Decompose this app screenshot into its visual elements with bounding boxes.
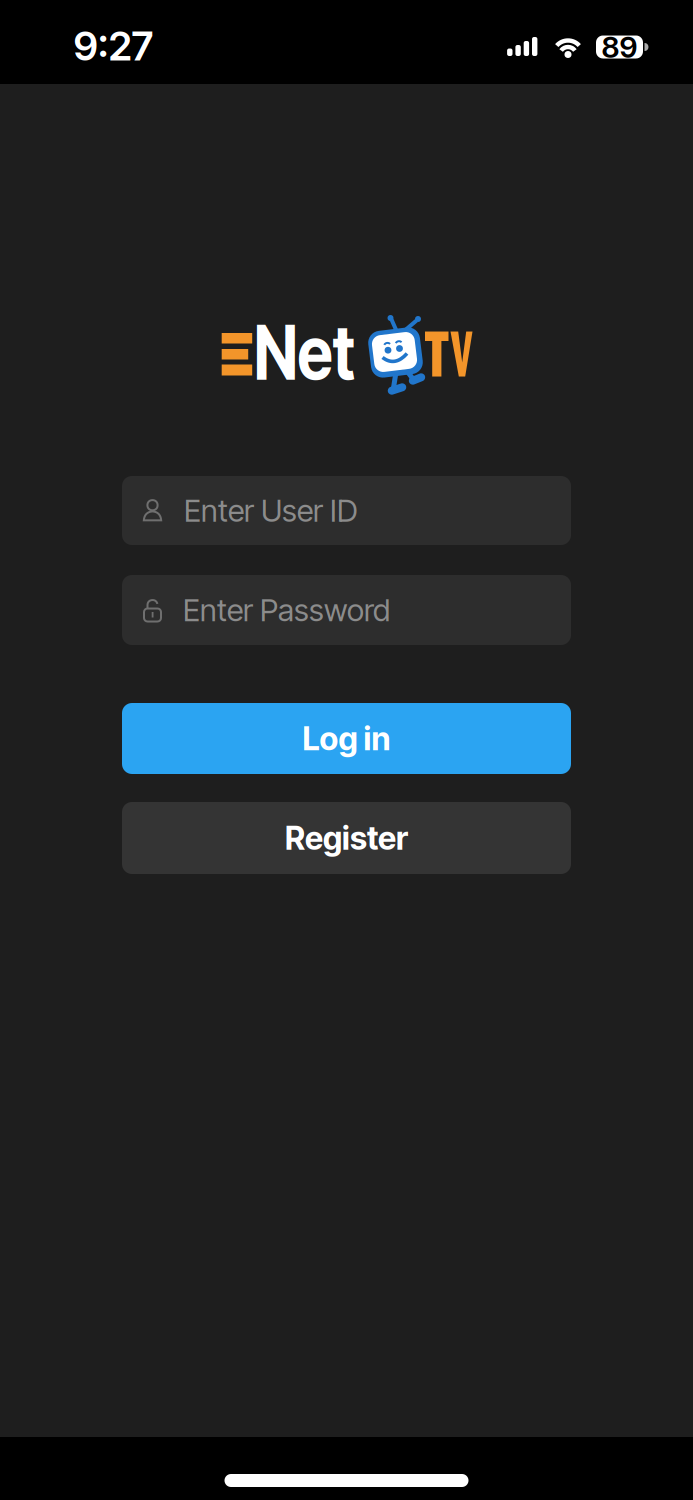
button[interactable]: Enter Password: [122, 575, 571, 645]
staticText: Register: [285, 819, 408, 857]
staticText: Log in: [302, 719, 390, 758]
staticText: Net: [243, 306, 366, 398]
staticText: 89: [601, 29, 637, 65]
button[interactable]: Register: [122, 802, 571, 874]
staticText: 9:27: [73, 22, 153, 70]
staticText: Enter Password: [183, 591, 390, 628]
staticText: Enter User ID: [184, 492, 358, 529]
button[interactable]: Log in: [122, 703, 571, 774]
button[interactable]: Enter User ID: [122, 476, 571, 545]
